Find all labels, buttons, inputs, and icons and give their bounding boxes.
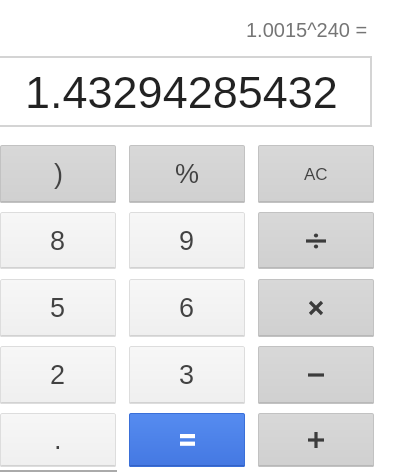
button[interactable]	[258, 413, 374, 467]
button[interactable]: 2	[0, 346, 116, 404]
button[interactable]: .	[0, 413, 116, 467]
staticText: 9	[179, 226, 195, 256]
button[interactable]: 6	[129, 279, 245, 337]
button[interactable]: )	[0, 145, 116, 203]
button[interactable]: %	[129, 145, 245, 203]
button[interactable]: 5	[0, 279, 116, 337]
staticText: 5	[50, 293, 66, 323]
staticText: %	[175, 159, 200, 189]
staticText: 1.0015^240 =	[246, 19, 368, 41]
staticText: 1.43294285432	[25, 67, 338, 117]
staticText: )	[54, 159, 63, 189]
staticText: .	[54, 425, 62, 455]
button[interactable]: 3	[129, 346, 245, 404]
staticText: 8	[50, 226, 66, 256]
button[interactable]: 9	[129, 212, 245, 269]
staticText: 6	[179, 293, 195, 323]
button[interactable]: 8	[0, 212, 116, 269]
button[interactable]	[258, 279, 374, 337]
button[interactable]	[258, 346, 374, 404]
button[interactable]	[129, 413, 245, 467]
staticText: AC	[304, 165, 328, 184]
button[interactable]	[258, 212, 374, 269]
button[interactable]: AC	[258, 145, 374, 203]
staticText: 2	[50, 360, 66, 390]
staticText: 3	[179, 360, 195, 390]
